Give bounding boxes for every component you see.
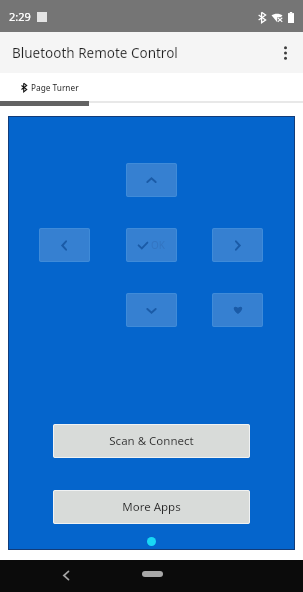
- button[interactable]: Page Turner: [0, 73, 88, 101]
- button[interactable]: Right: [212, 228, 263, 262]
- button[interactable]: More Apps: [53, 490, 250, 524]
- button[interactable]: OK: [126, 228, 177, 262]
- staticText: Scan & Connect: [109, 433, 194, 449]
- button[interactable]: Home: [135, 560, 169, 587]
- button[interactable]: Up: [126, 163, 177, 197]
- button[interactable]: Down: [126, 293, 177, 327]
- staticText: 2:29: [9, 9, 31, 24]
- button[interactable]: Favorite: [212, 293, 263, 327]
- staticText: OK: [151, 238, 165, 252]
- button[interactable]: Back: [52, 562, 79, 589]
- staticText: More Apps: [122, 499, 181, 515]
- button[interactable]: Left: [39, 228, 90, 262]
- button[interactable]: More options: [267, 32, 303, 73]
- button[interactable]: Scan & Connect: [53, 424, 250, 458]
- staticText: Page Turner: [31, 82, 79, 93]
- staticText: Bluetooth Remote Control: [12, 44, 178, 62]
